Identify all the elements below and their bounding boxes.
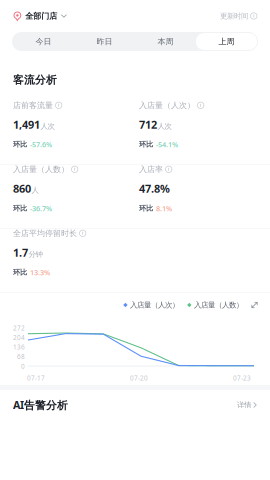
staticText: 昨日 bbox=[96, 36, 112, 47]
staticText: 136 bbox=[13, 343, 25, 351]
staticText: 人次 bbox=[40, 121, 54, 131]
staticText: 分钟 bbox=[28, 249, 42, 259]
staticText: 07-20 bbox=[130, 374, 148, 382]
staticText: 入店率 bbox=[139, 164, 163, 174]
button[interactable]: 本周 bbox=[135, 33, 196, 50]
button[interactable]: 更新时间 bbox=[220, 11, 257, 21]
staticText: 07-17 bbox=[27, 374, 45, 382]
staticText: AI告警分析 bbox=[13, 398, 68, 412]
staticText: 272 bbox=[13, 324, 25, 332]
staticText: 07-23 bbox=[233, 374, 251, 382]
staticText: 客流分析 bbox=[13, 73, 57, 87]
staticText: 环比 bbox=[13, 204, 27, 213]
button[interactable]: 昨日 bbox=[74, 33, 135, 50]
staticText: 今日 bbox=[35, 36, 51, 47]
staticText: 人 bbox=[31, 185, 38, 195]
button[interactable]: Expand chart bbox=[251, 301, 258, 308]
staticText: 详情 bbox=[237, 400, 251, 410]
staticText: 全店平均停留时长 bbox=[13, 228, 77, 238]
staticText: 更新时间 bbox=[220, 11, 248, 21]
staticText: 860 bbox=[13, 181, 31, 196]
staticText: 上周 bbox=[218, 36, 234, 47]
staticText: 环比 bbox=[13, 140, 27, 149]
staticText: 1.7 bbox=[13, 245, 28, 260]
staticText: -57.6% bbox=[30, 139, 52, 149]
staticText: 入店量（人次） bbox=[130, 300, 179, 310]
staticText: 环比 bbox=[139, 204, 153, 213]
button[interactable]: 上周 bbox=[196, 33, 257, 50]
button[interactable]: 今日 bbox=[13, 33, 74, 50]
staticText: 环比 bbox=[139, 140, 153, 149]
staticText: 13.3% bbox=[30, 267, 50, 277]
staticText: 入店量（人数） bbox=[194, 300, 243, 310]
staticText: 712 bbox=[139, 117, 157, 132]
staticText: 人次 bbox=[157, 121, 171, 131]
staticText: 本周 bbox=[157, 36, 173, 47]
staticText: 全部门店 bbox=[25, 11, 57, 21]
staticText: 0 bbox=[21, 362, 25, 370]
staticText: 47.8% bbox=[139, 181, 170, 196]
button[interactable]: 全部门店 bbox=[13, 11, 67, 21]
staticText: 68 bbox=[17, 352, 25, 361]
staticText: 环比 bbox=[13, 268, 27, 277]
staticText: 204 bbox=[13, 333, 25, 342]
staticText: 8.1% bbox=[156, 203, 172, 213]
button[interactable]: 详情 bbox=[237, 400, 257, 410]
staticText: -36.7% bbox=[30, 203, 52, 213]
staticText: 1,491 bbox=[13, 117, 40, 132]
staticText: 店前客流量 bbox=[13, 100, 53, 110]
staticText: -54.1% bbox=[156, 139, 178, 149]
staticText: 入店量（人数） bbox=[13, 164, 69, 174]
staticText: 入店量（人次） bbox=[139, 100, 195, 110]
